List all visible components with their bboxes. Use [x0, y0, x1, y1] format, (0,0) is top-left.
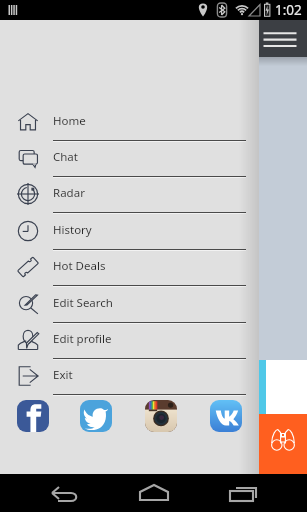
staticText: Radar: [53, 185, 85, 201]
button[interactable]: Explore: [259, 414, 307, 474]
button[interactable]: Exit: [0, 360, 259, 396]
staticText: Chat: [53, 149, 78, 165]
staticText: Home: [53, 113, 86, 129]
button[interactable]: Chat: [0, 142, 259, 178]
button[interactable]: Open navigation menu: [259, 20, 307, 57]
button[interactable]: Hot Deals: [0, 251, 259, 287]
button[interactable]: facebook: [17, 400, 49, 432]
button[interactable]: Edit profile: [0, 324, 259, 360]
button[interactable]: History: [0, 215, 259, 251]
button[interactable]: vk: [210, 400, 242, 432]
staticText: History: [53, 222, 92, 238]
staticText: 1:02: [275, 1, 302, 19]
staticText: Edit profile: [53, 331, 112, 347]
staticText: Exit: [53, 367, 73, 383]
button[interactable]: Edit Search: [0, 288, 259, 324]
button[interactable]: Home: [0, 106, 259, 142]
staticText: Edit Search: [53, 295, 113, 311]
staticText: Hot Deals: [53, 258, 106, 274]
button[interactable]: twitter: [80, 400, 112, 432]
button[interactable]: Radar: [0, 178, 259, 214]
button[interactable]: instagram: [145, 400, 177, 432]
